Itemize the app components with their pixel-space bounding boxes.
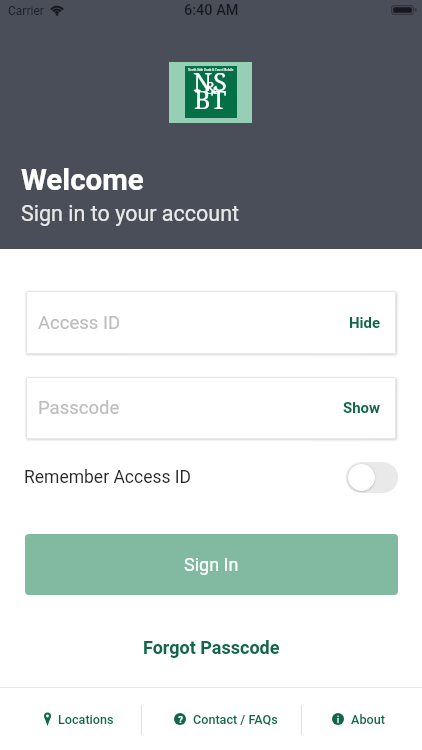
button[interactable]: Hide (334, 306, 396, 340)
staticText: 6:40 AM (184, 2, 239, 19)
staticText: BT (194, 82, 228, 116)
other: Wi-Fi (50, 4, 64, 15)
staticText: Access ID (38, 312, 121, 334)
staticText: Show (343, 399, 381, 417)
other: Battery full (391, 5, 418, 16)
staticText: Passcode (38, 397, 120, 419)
staticText: Carrier (8, 4, 44, 18)
staticText: Sign in to your account (21, 201, 240, 226)
staticText: & (205, 76, 218, 99)
button[interactable]: Access ID (26, 291, 396, 354)
staticText: Contact / FAQs (193, 712, 278, 727)
staticText: Forgot Passcode (143, 637, 280, 658)
staticText: Welcome (21, 163, 144, 198)
staticText: North Side Bank & Trust Mobile (188, 68, 234, 72)
other: North Side Bank & Trust logo (169, 62, 252, 123)
staticText: About (351, 712, 385, 727)
staticText: NS (193, 64, 229, 98)
button[interactable]: Show (328, 391, 396, 425)
staticText: Sign In (184, 554, 239, 575)
button[interactable]: Remember Access ID (346, 462, 398, 493)
button[interactable]: Locations (0, 688, 141, 750)
staticText: Hide (349, 314, 381, 332)
button[interactable]: Sign In (25, 534, 398, 595)
button[interactable]: Passcode (26, 377, 396, 439)
button[interactable]: ? (142, 688, 301, 750)
staticText: ? (178, 714, 183, 725)
staticText: Remember Access ID (24, 467, 192, 488)
button[interactable]: Forgot Passcode (127, 629, 296, 666)
button[interactable]: About (298, 688, 418, 750)
staticText: Locations (58, 712, 114, 727)
